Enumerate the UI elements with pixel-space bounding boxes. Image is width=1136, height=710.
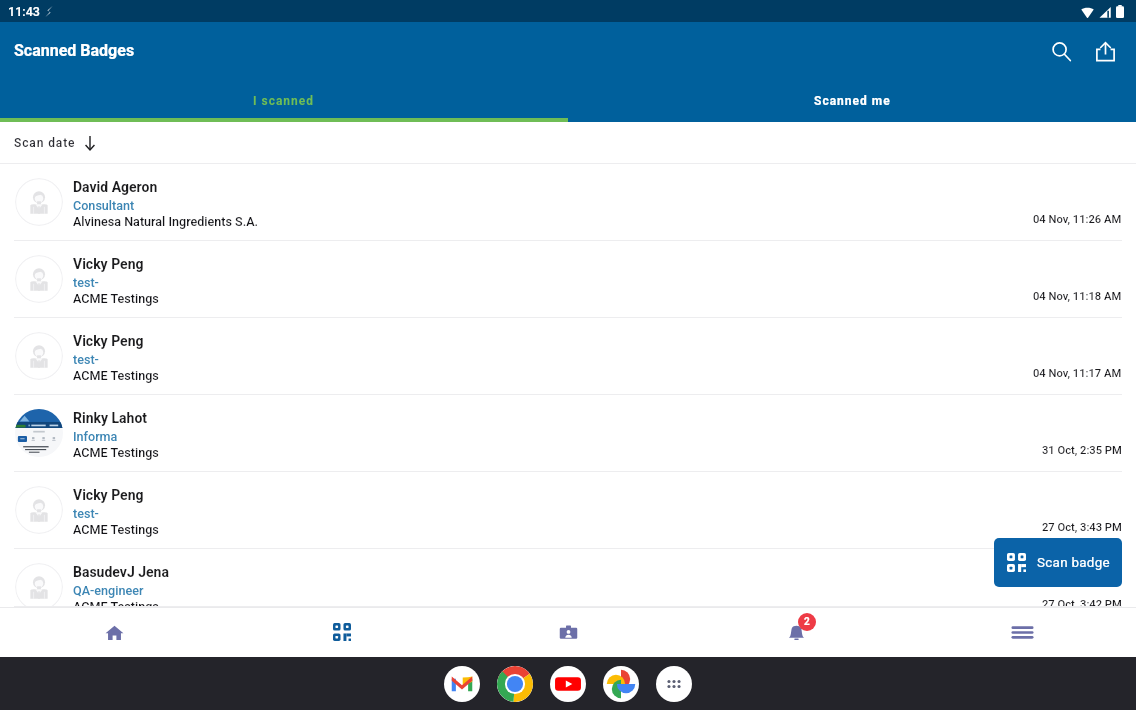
button[interactable]: Search [1039, 29, 1083, 73]
button[interactable]: Vicky Peng [0, 241, 1136, 318]
button[interactable]: Chrome [497, 666, 533, 702]
button[interactable]: Notifications [682, 607, 909, 657]
button[interactable]: Photos [603, 666, 639, 702]
staticText: BasudevJ Jena [73, 564, 169, 580]
button[interactable]: Scan date [14, 136, 96, 150]
staticText: test- [73, 275, 99, 290]
staticText: Scanned me [814, 94, 891, 108]
button[interactable]: Gmail [444, 666, 480, 702]
staticText: QA-engineer [73, 583, 144, 598]
button[interactable]: Contacts [455, 607, 682, 657]
staticText: ACME Testings [73, 368, 159, 383]
button[interactable]: I scanned [0, 79, 568, 122]
button[interactable]: YouTube [550, 666, 586, 702]
button[interactable]: David Ageron [0, 164, 1136, 241]
button[interactable]: Scan badge [994, 538, 1122, 587]
staticText: 04 Nov, 11:17 AM [1033, 367, 1122, 380]
staticText: test- [73, 506, 99, 521]
button[interactable]: Rinky Lahot [0, 395, 1136, 472]
staticText: 04 Nov, 11:26 AM [1033, 213, 1122, 226]
button[interactable]: Menu [909, 607, 1136, 657]
staticText: 04 Nov, 11:18 AM [1033, 290, 1122, 303]
button[interactable]: Home [0, 607, 228, 657]
staticText: ACME Testings [73, 522, 159, 537]
staticText: Vicky Peng [73, 333, 144, 349]
staticText: test- [73, 352, 99, 367]
button[interactable]: Scan badge [228, 607, 455, 657]
button[interactable]: BasudevJ Jena [0, 549, 1136, 607]
staticText: 27 Oct, 3:42 PM [1042, 598, 1122, 607]
staticText: 2 [804, 616, 810, 628]
staticText: David Ageron [73, 179, 158, 195]
staticText: 27 Oct, 3:43 PM [1042, 521, 1122, 534]
staticText: ACME Testings [73, 445, 159, 460]
button[interactable]: Share [1083, 29, 1127, 73]
staticText: 31 Oct, 2:35 PM [1042, 444, 1122, 457]
staticText: ACME Testings [73, 599, 159, 607]
staticText: Scan date [14, 136, 76, 150]
staticText: Rinky Lahot [73, 410, 148, 426]
staticText: Informa [73, 429, 118, 444]
staticText: ACME Testings [73, 291, 159, 306]
staticText: Alvinesa Natural Ingredients S.A. [73, 214, 259, 229]
button[interactable]: Vicky Peng [0, 472, 1136, 549]
button[interactable]: All apps [656, 666, 692, 702]
button[interactable]: Vicky Peng [0, 318, 1136, 395]
staticText: I scanned [253, 94, 315, 108]
staticText: Scan badge [1037, 555, 1110, 571]
staticText: Scanned Badges [14, 41, 135, 60]
staticText: 11:43 [8, 4, 40, 19]
staticText: Consultant [73, 198, 135, 213]
button[interactable]: Scanned me [568, 79, 1136, 122]
staticText: Vicky Peng [73, 256, 144, 272]
staticText: Vicky Peng [73, 487, 144, 503]
